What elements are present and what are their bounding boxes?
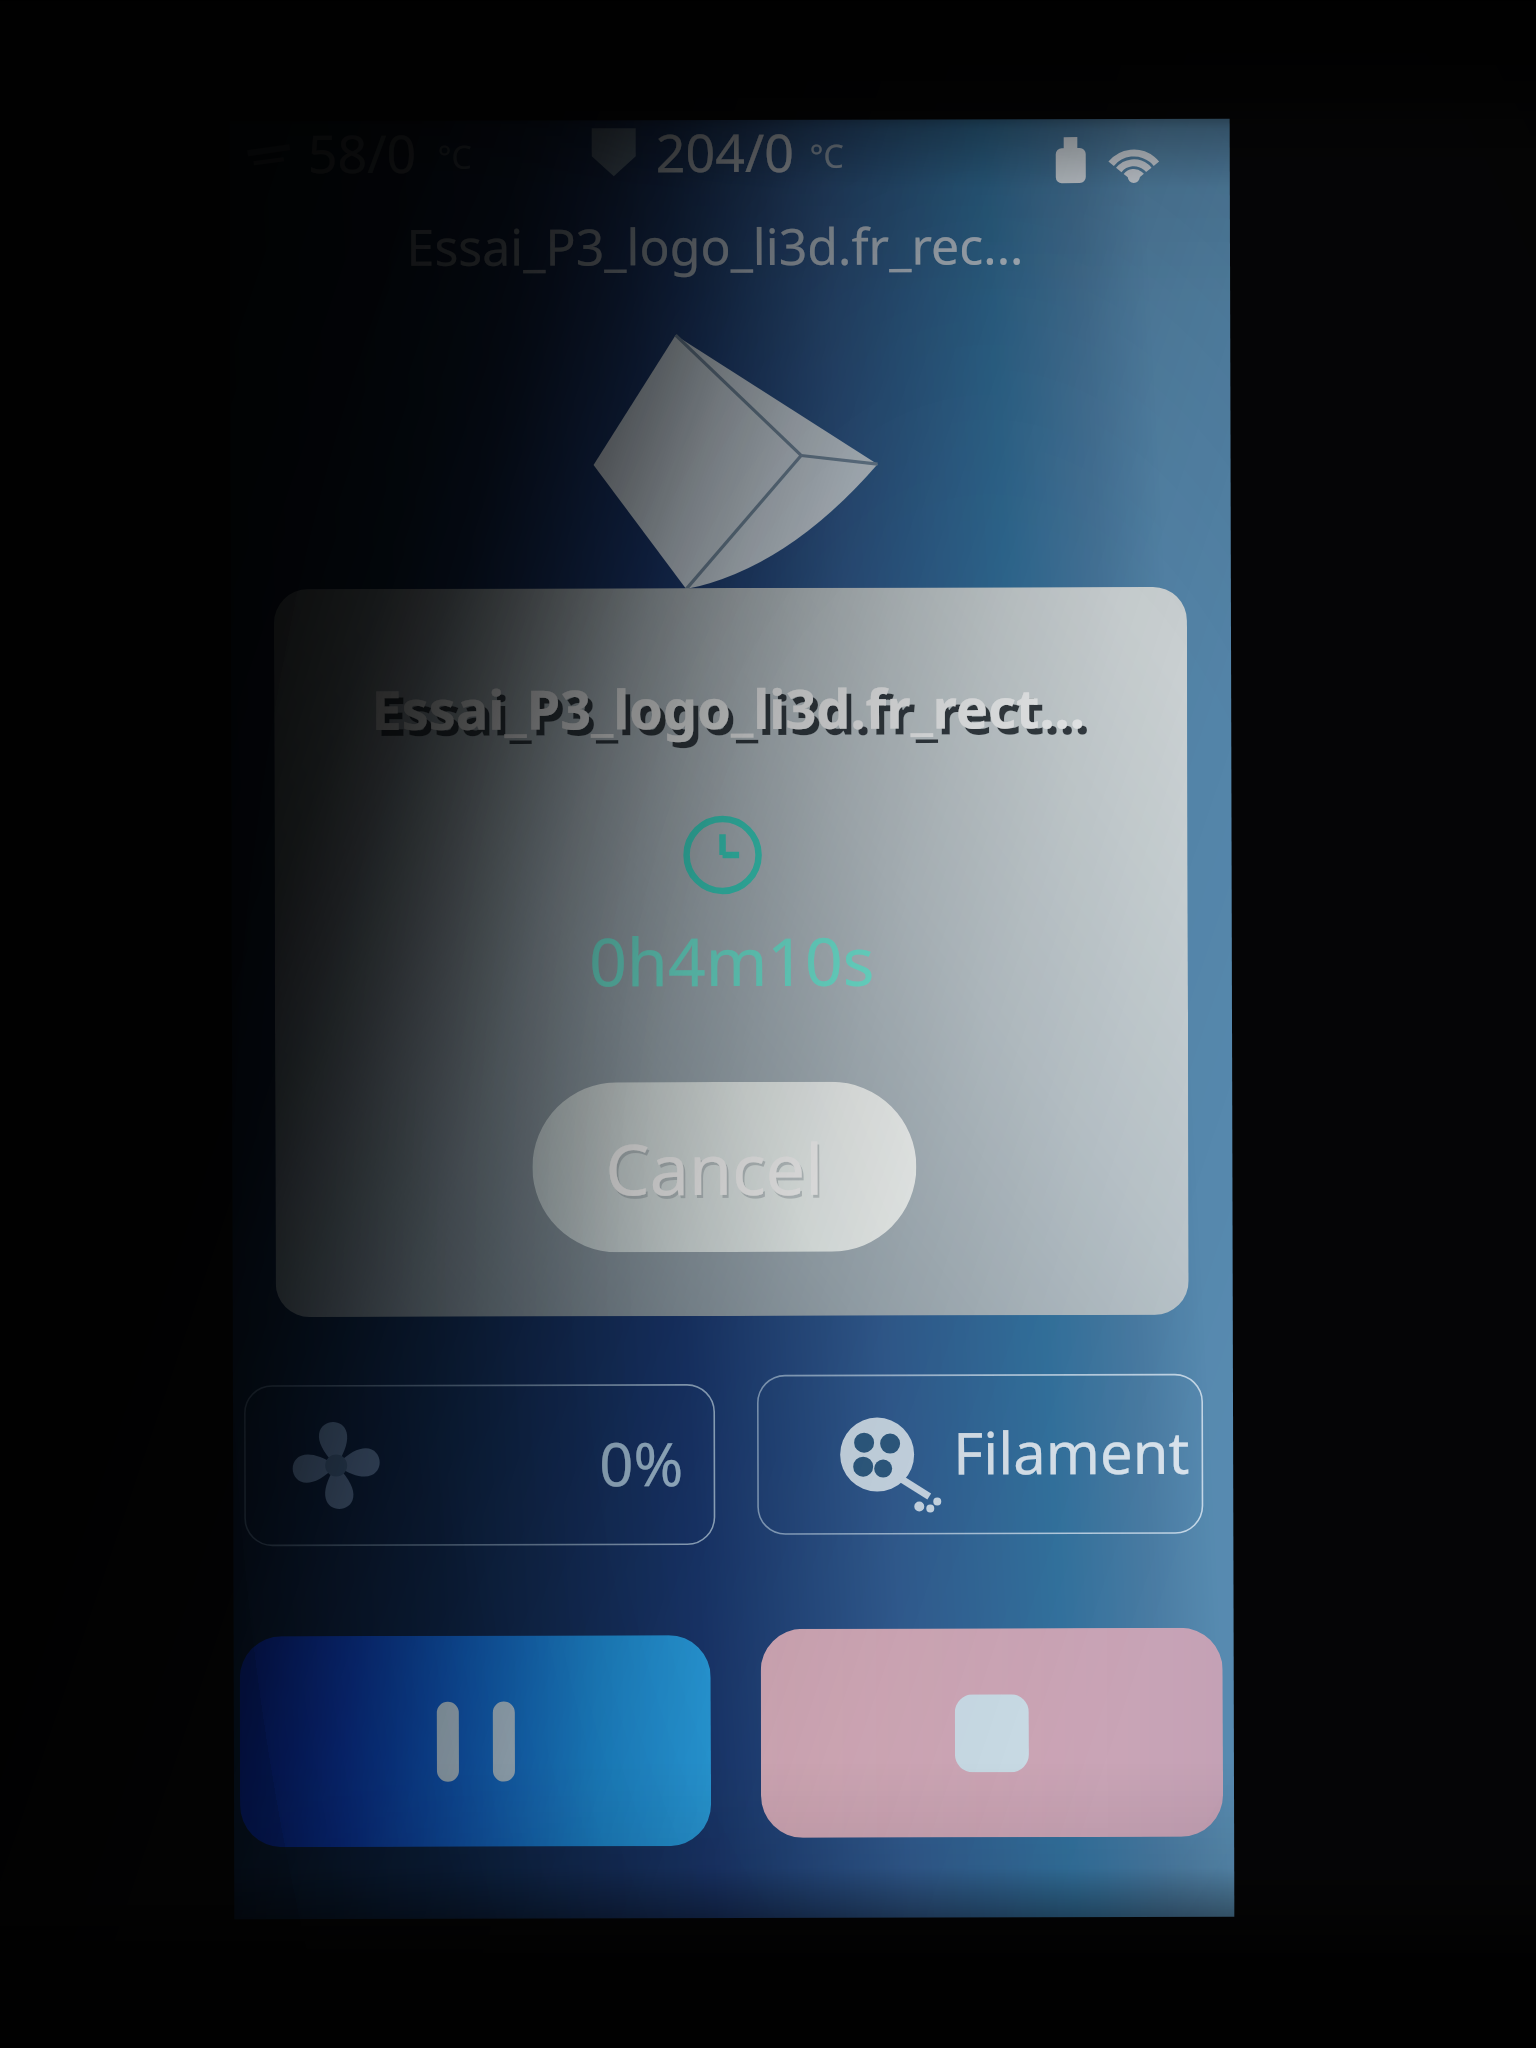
staticText: Cancel	[605, 1120, 823, 1215]
staticText: Cancel	[607, 1123, 825, 1218]
button[interactable]: Nozzle temperature	[588, 106, 888, 182]
staticText: 0h4m10s	[432, 914, 1032, 1004]
staticText: 58/0	[308, 117, 417, 188]
staticText: Essai_P3_logo_li3d.fr_rect...	[369, 670, 1087, 752]
staticText: °C	[810, 134, 844, 178]
button[interactable]: Pause print	[240, 1635, 711, 1847]
button[interactable]: Cancel	[532, 1081, 917, 1252]
button[interactable]: Material	[1052, 137, 1092, 185]
button[interactable]: Stop print	[761, 1628, 1223, 1838]
button[interactable]: Wi-Fi	[1106, 139, 1162, 183]
button[interactable]: Part cooling fan	[244, 1384, 715, 1546]
staticText: Essai_P3_logo_li3d.fr_rect...	[374, 676, 1092, 758]
staticText: Filament	[953, 1412, 1190, 1491]
button[interactable]: Essai_P3_logo_li3d.fr_rec...	[375, 211, 1055, 289]
staticText: 0%	[599, 1422, 684, 1504]
button[interactable]: Bed temperature	[246, 107, 496, 183]
button[interactable]: Filament	[757, 1374, 1203, 1535]
staticText: 204/0	[656, 116, 795, 187]
staticText: Essai_P3_logo_li3d.fr_rec...	[375, 211, 1055, 289]
